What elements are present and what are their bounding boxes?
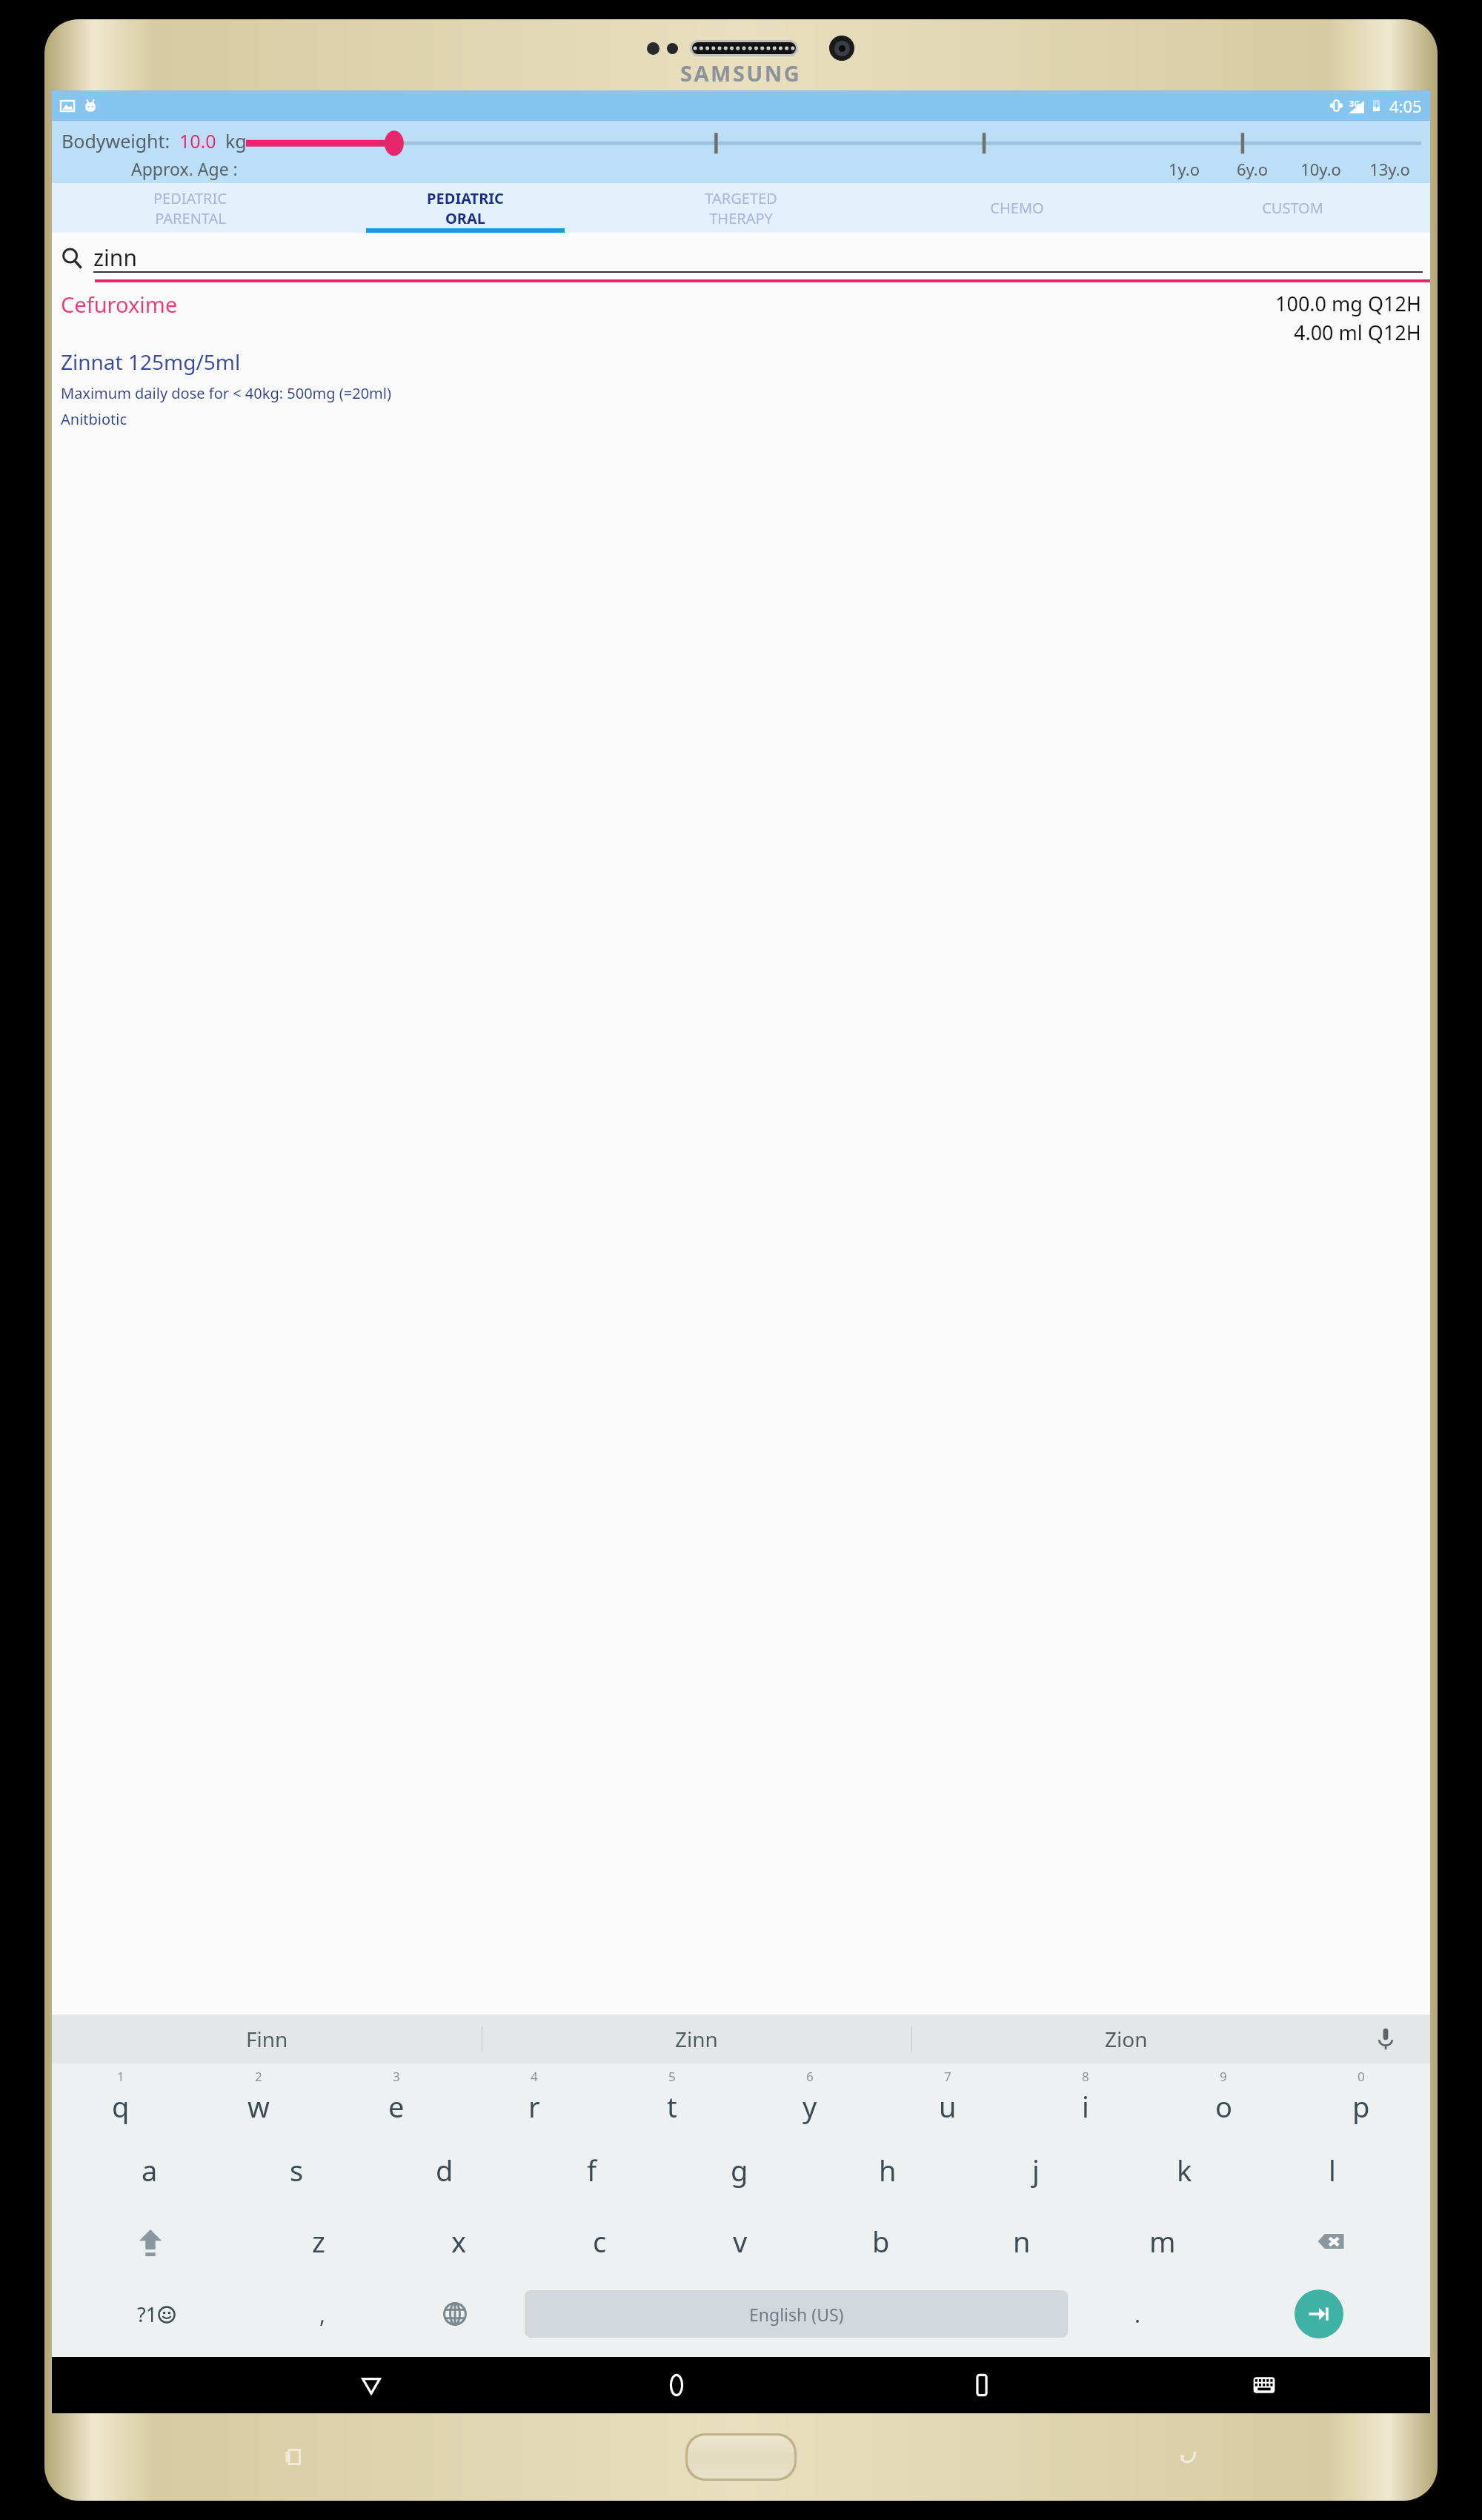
staticText: 9 [1220,2068,1227,2085]
button[interactable]: l [1258,2135,1406,2206]
staticText: Finn [246,2025,288,2053]
staticText: 4 [531,2068,538,2085]
staticText: , [319,2299,326,2330]
button[interactable]: z [248,2206,388,2277]
staticText: Anitbiotic [61,409,127,429]
staticText: 1 [117,2068,124,2085]
button[interactable]: c [529,2206,670,2277]
staticText: ?1 [137,2301,158,2328]
button[interactable]: ?1 [52,2277,260,2351]
staticText: PEDIATRIC [153,188,227,208]
button[interactable]: d [370,2135,518,2206]
staticText: c [593,2222,607,2261]
button[interactable]: p [1292,2078,1430,2135]
staticText: r [528,2087,540,2126]
button[interactable]: n [951,2206,1092,2277]
staticText: o [1215,2087,1232,2126]
staticText: 13y.o [1355,158,1424,180]
button[interactable]: Cefuroxime [52,282,1430,437]
button[interactable]: , [260,2277,385,2351]
staticText: 4.00 ml Q12H [1294,319,1421,346]
button[interactable]: TARGETED [603,183,879,233]
staticText: z [312,2222,325,2261]
staticText: 6 [806,2068,814,2085]
staticText: q [112,2087,130,2126]
staticText: n [1013,2222,1031,2261]
button[interactable]: w [190,2078,328,2135]
staticText: k [1177,2151,1192,2189]
staticText: i [1082,2087,1089,2126]
button[interactable]: k [1110,2135,1258,2206]
button[interactable]: v [670,2206,811,2277]
staticText: h [879,2151,897,2189]
staticText: 10y.o [1286,158,1355,180]
staticText: 6y.o [1218,158,1286,180]
button[interactable]: t [603,2078,741,2135]
button[interactable]: o [1154,2078,1292,2135]
button[interactable]: Recents [829,2357,1134,2413]
button[interactable]: u [879,2078,1017,2135]
staticText: u [939,2087,957,2126]
button[interactable]: Zinn [482,2015,911,2063]
button[interactable]: s [223,2135,370,2206]
staticText: Maximum daily dose for < 40kg: 500mg (=2… [61,383,391,403]
button[interactable]: Home [524,2357,829,2413]
button[interactable]: e [328,2078,465,2135]
button[interactable]: r [465,2078,603,2135]
button[interactable]: Backspace [1233,2206,1430,2277]
button[interactable]: Enter [1295,2289,1343,2338]
staticText: p [1352,2087,1370,2126]
button[interactable]: x [388,2206,529,2277]
staticText: ORAL [445,208,485,228]
staticText: 3 [393,2068,400,2085]
staticText: f [587,2151,597,2189]
button[interactable]: i [1017,2078,1154,2135]
staticText: 4:05 [1389,95,1422,117]
staticText: m [1149,2222,1176,2261]
button[interactable]: PEDIATRIC [328,183,603,233]
staticText: THERAPY [709,208,773,228]
staticText: SAMSUNG [680,59,802,87]
staticText: d [436,2151,453,2189]
staticText: j [1032,2151,1040,2189]
staticText: l [1329,2151,1336,2189]
button[interactable]: h [814,2135,962,2206]
button[interactable]: Voice input [1341,2015,1430,2063]
staticText: English (US) [749,2303,844,2326]
staticText: 8 [1082,2068,1089,2085]
button[interactable]: a [76,2135,223,2206]
button[interactable]: Hide keyboard [1134,2357,1394,2413]
staticText: Approx. Age : [131,157,238,180]
button[interactable]: English (US) [525,2290,1068,2338]
button[interactable]: j [962,2135,1110,2206]
staticText: TARGETED [705,188,777,208]
button[interactable]: Back [219,2357,524,2413]
button[interactable]: g [665,2135,814,2206]
button[interactable]: Finn [52,2015,482,2063]
staticText: 10.0 [179,128,216,153]
staticText: 7 [944,2068,951,2085]
button[interactable]: q [52,2078,190,2135]
staticText: CUSTOM [1262,198,1323,218]
staticText: kg [225,128,247,153]
button[interactable]: PEDIATRIC [52,183,328,233]
staticText: v [733,2222,748,2261]
button[interactable]: . [1068,2277,1207,2351]
button[interactable]: b [811,2206,951,2277]
button[interactable]: Change language [385,2277,525,2351]
button[interactable]: CUSTOM [1154,183,1430,233]
button[interactable]: CHEMO [879,183,1154,233]
button[interactable]: Shift [52,2206,248,2277]
button[interactable]: m [1092,2206,1233,2277]
button[interactable]: Home [688,2436,794,2478]
button[interactable]: f [518,2135,665,2206]
staticText: s [290,2151,304,2189]
staticText: Zinnat 125mg/5ml [61,348,241,376]
staticText: PEDIATRIC [427,188,504,208]
staticText: Bodyweight: [62,128,170,153]
staticText: PARENTAL [155,208,226,228]
staticText: Zinn [675,2025,718,2053]
button[interactable]: Zion [911,2015,1341,2063]
button[interactable]: y [741,2078,879,2135]
staticText: 5 [668,2068,676,2085]
